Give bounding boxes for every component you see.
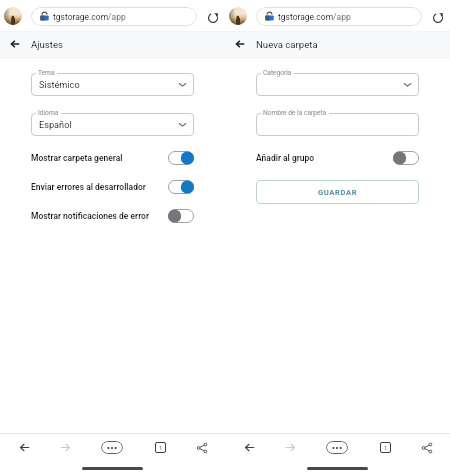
button[interactable]: tgstorage.com/app <box>256 7 422 26</box>
staticText: tgstorage.com/app <box>53 12 126 22</box>
staticText: Mostrar carpeta general <box>31 153 123 163</box>
button[interactable] <box>256 73 419 96</box>
staticText: Idioma <box>38 109 59 117</box>
staticText: Enviar errores al desarrollador <box>31 182 146 192</box>
staticText: tgstorage.com/app <box>278 12 351 22</box>
staticText: Tema <box>38 69 55 77</box>
staticText: Ajustes <box>31 39 63 50</box>
button[interactable]: Reload <box>204 9 221 26</box>
staticText: Nueva carpeta <box>256 39 318 50</box>
button[interactable]: Sistémico <box>31 73 194 96</box>
button[interactable]: Share <box>188 434 215 461</box>
staticText: GUARDAR <box>318 188 358 197</box>
staticText: Categoría <box>263 69 292 77</box>
staticText: Sistémico <box>39 79 80 90</box>
staticText: Añadir al grupo <box>256 153 315 163</box>
staticText: Mostrar notificaciones de error <box>31 211 149 221</box>
button[interactable]: Tabs <box>372 434 399 461</box>
staticText: 1 <box>384 444 388 451</box>
button[interactable]: Share <box>413 434 440 461</box>
button[interactable]: Enviar errores al desarrollador <box>31 172 194 201</box>
button[interactable]: GUARDAR <box>256 180 419 204</box>
button[interactable] <box>256 113 419 136</box>
button[interactable]: Añadir al grupo <box>256 143 419 172</box>
button[interactable]: Back <box>236 434 263 461</box>
button[interactable]: More options <box>326 441 348 454</box>
button[interactable]: Back <box>11 434 38 461</box>
button[interactable]: Tabs <box>147 434 174 461</box>
staticText: 1 <box>159 444 163 451</box>
staticText: Nombre de la carpeta <box>263 109 327 117</box>
button[interactable]: Back <box>1 30 28 57</box>
staticText: Español <box>39 119 72 130</box>
button[interactable]: Forward <box>277 434 304 461</box>
button[interactable]: Reload <box>429 9 446 26</box>
button[interactable]: More options <box>101 441 123 454</box>
button[interactable]: Mostrar notificaciones de error <box>31 201 194 230</box>
button[interactable]: Back <box>226 30 253 57</box>
button[interactable]: Mostrar carpeta general <box>31 143 194 172</box>
button[interactable]: Profile <box>229 7 247 25</box>
button[interactable]: Español <box>31 113 194 136</box>
button[interactable]: tgstorage.com/app <box>31 7 197 26</box>
button[interactable]: Profile <box>4 7 22 25</box>
button[interactable]: Forward <box>52 434 79 461</box>
